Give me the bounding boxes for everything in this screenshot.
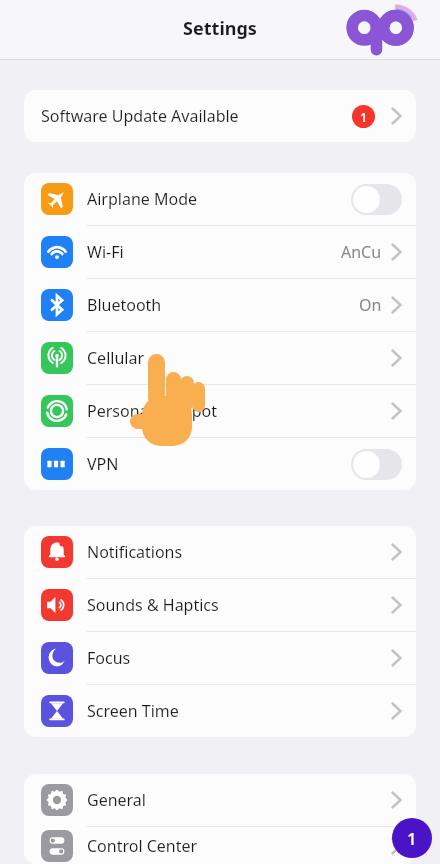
button[interactable]: Software Update Available [24,90,416,142]
button[interactable]: Notification badge [392,818,432,858]
button[interactable]: Screen Time [24,685,416,737]
staticText: Focus [87,647,131,669]
staticText: AnCu [341,241,382,263]
button[interactable]: Airplane Mode [24,173,416,226]
button[interactable]: Bluetooth [24,279,416,332]
staticText: Bluetooth [87,294,162,316]
staticText: Sounds & Haptics [87,594,219,616]
staticText: Software Update Available [41,105,239,127]
button[interactable]: Control Center [24,827,416,864]
staticText: General [87,789,146,811]
staticText: 1 [360,108,368,126]
button[interactable]: General [24,774,416,827]
button[interactable]: Personal Hotspot [24,385,416,438]
staticText: 1 [407,827,417,850]
staticText: On [359,294,382,316]
button[interactable]: VPN toggle [351,449,402,480]
staticText: Notifications [87,541,183,563]
button[interactable]: Sounds & Haptics [24,579,416,632]
button[interactable]: go logo [340,1,430,59]
button[interactable]: Wi-Fi [24,226,416,279]
staticText: VPN [87,453,119,475]
button[interactable]: Focus [24,632,416,685]
button[interactable]: Cellular [24,332,416,385]
staticText: Airplane Mode [87,188,198,210]
staticText: Settings [183,16,257,41]
staticText: Screen Time [87,700,179,722]
staticText: Cellular [87,347,144,369]
staticText: Wi-Fi [87,241,124,263]
button[interactable]: VPN [24,438,416,490]
button[interactable]: Notifications [24,526,416,579]
staticText: Control Center [87,835,198,857]
staticText: Personal Hotspot [87,400,218,422]
button[interactable]: Airplane Mode toggle [351,184,402,215]
